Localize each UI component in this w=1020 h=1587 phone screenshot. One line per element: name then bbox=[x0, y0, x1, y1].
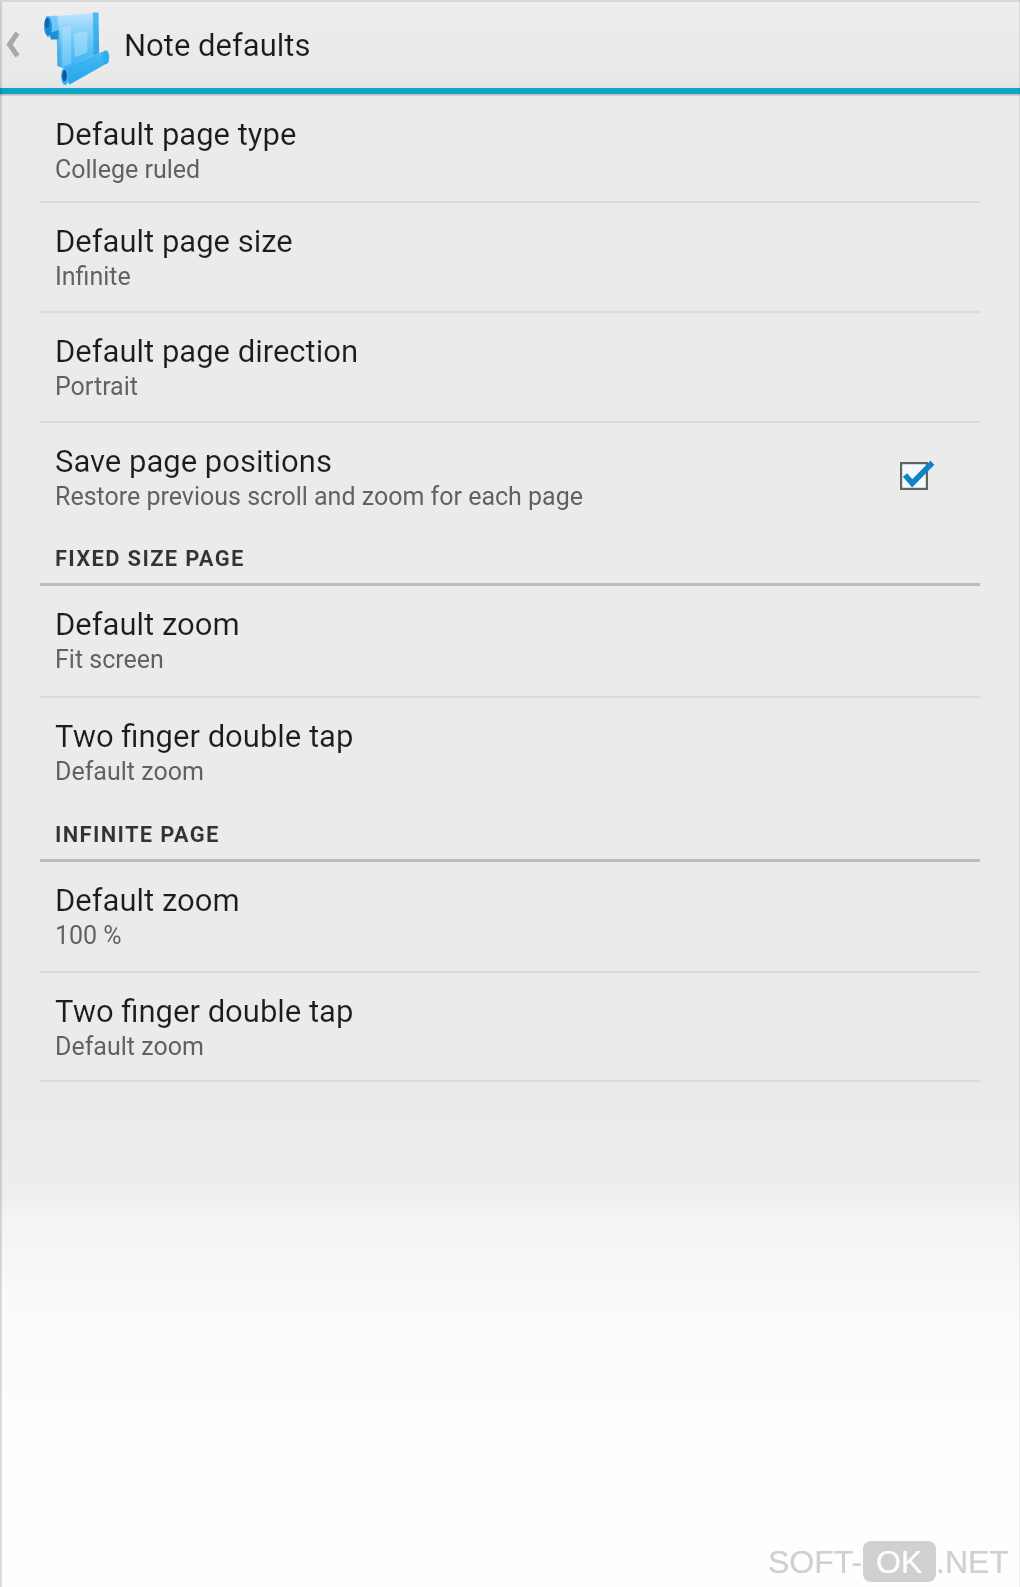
staticText: Restore previous scroll and zoom for eac… bbox=[55, 482, 584, 511]
staticText: FIXED SIZE PAGE bbox=[55, 546, 245, 572]
button[interactable]: Two finger double tap bbox=[0, 698, 1020, 809]
staticText: Default page direction bbox=[55, 333, 359, 369]
button[interactable]: Toggle save page positions bbox=[889, 448, 945, 504]
staticText: SOFT- bbox=[768, 1544, 863, 1580]
staticText: Default zoom bbox=[55, 757, 204, 786]
button[interactable]: Two finger double tap bbox=[0, 973, 1020, 1082]
staticText: Default zoom bbox=[55, 1032, 204, 1061]
staticText: Default zoom bbox=[55, 606, 240, 642]
staticText: Default zoom bbox=[55, 882, 240, 918]
button[interactable]: Navigate up bbox=[0, 0, 124, 88]
staticText: Default page type bbox=[55, 116, 297, 152]
staticText: College ruled bbox=[55, 155, 201, 184]
staticText: Infinite bbox=[55, 262, 131, 291]
staticText: Note defaults bbox=[124, 27, 311, 63]
button[interactable]: Default page direction bbox=[0, 313, 1020, 423]
button[interactable]: Default page type bbox=[0, 96, 1020, 203]
button[interactable]: Default zoom bbox=[0, 862, 1020, 973]
staticText: 100 % bbox=[55, 921, 122, 950]
staticText: Two finger double tap bbox=[55, 993, 354, 1029]
staticText: Fit screen bbox=[55, 645, 164, 674]
staticText: OK bbox=[876, 1544, 923, 1580]
staticText: Two finger double tap bbox=[55, 718, 354, 754]
staticText: Portrait bbox=[55, 372, 138, 401]
staticText: INFINITE PAGE bbox=[55, 822, 220, 848]
button[interactable]: Save page positions bbox=[0, 423, 1020, 533]
staticText: Default page size bbox=[55, 223, 293, 259]
button[interactable]: Default zoom bbox=[0, 586, 1020, 698]
staticText: Save page positions bbox=[55, 443, 332, 479]
button[interactable]: Default page size bbox=[0, 203, 1020, 313]
staticText: .NET bbox=[936, 1544, 1009, 1580]
